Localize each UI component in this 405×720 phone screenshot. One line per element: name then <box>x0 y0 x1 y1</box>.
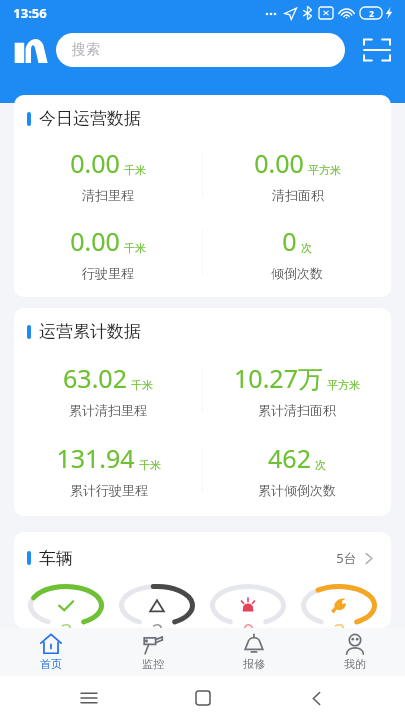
button[interactable]: Home <box>179 676 227 720</box>
staticText: 次 <box>301 241 312 255</box>
staticText: 63.02 <box>63 361 127 395</box>
button[interactable]: 今日运营数据 <box>14 95 391 297</box>
button[interactable]: Recents <box>65 676 113 720</box>
staticText: 累计行驶里程 <box>70 482 148 498</box>
staticText: 今日运营数据 <box>39 108 141 129</box>
button[interactable]: 我的 <box>304 628 405 676</box>
staticText: 运营累计数据 <box>39 321 141 342</box>
staticText: 累计倾倒次数 <box>258 482 336 498</box>
staticText: 报修 <box>243 657 265 671</box>
staticText: 搜索 <box>72 41 100 59</box>
staticText: 行驶里程 <box>82 265 134 281</box>
staticText: 2 <box>151 616 164 628</box>
button[interactable]: 车辆状态 <box>118 583 196 628</box>
staticText: 13:56 <box>13 4 47 22</box>
staticText: 2 <box>369 8 374 19</box>
staticText: 0.00 <box>70 146 120 180</box>
button[interactable]: 运营累计数据 <box>14 308 391 516</box>
other: Logo <box>14 37 48 63</box>
staticText: 累计清扫里程 <box>69 402 147 418</box>
staticText: 千米 <box>124 163 146 177</box>
staticText: 3 <box>60 616 73 628</box>
button[interactable]: 5台 <box>332 545 377 571</box>
staticText: 5台 <box>336 549 357 567</box>
button[interactable]: 监控 <box>102 628 203 676</box>
staticText: 清扫面积 <box>272 187 324 203</box>
button[interactable]: 车辆状态 <box>27 583 105 628</box>
button[interactable]: 车辆状态 <box>209 583 287 628</box>
button[interactable]: 扫一扫 <box>357 30 397 70</box>
staticText: 0 <box>242 616 255 628</box>
button[interactable]: 报修 <box>203 628 304 676</box>
staticText: 千米 <box>131 378 153 392</box>
staticText: 监控 <box>142 657 164 671</box>
button[interactable]: 车辆状态 <box>300 583 378 628</box>
staticText: 我的 <box>344 657 366 671</box>
button[interactable]: 首页 <box>0 628 102 676</box>
staticText: 3 <box>333 616 346 628</box>
staticText: 清扫里程 <box>82 187 134 203</box>
staticText: 首页 <box>40 657 62 671</box>
staticText: 0.00 <box>70 224 120 258</box>
staticText: 千米 <box>139 458 161 472</box>
button[interactable]: Back <box>292 676 340 720</box>
button[interactable]: 搜索 <box>56 33 345 67</box>
staticText: 千米 <box>124 241 146 255</box>
staticText: 平方米 <box>327 378 360 392</box>
staticText: 462 <box>268 441 311 475</box>
staticText: 10.27万 <box>234 361 323 395</box>
staticText: 平方米 <box>308 163 341 177</box>
staticText: 车辆 <box>39 548 73 569</box>
staticText: 倾倒次数 <box>271 265 323 281</box>
staticText: 次 <box>315 458 326 472</box>
staticText: 累计清扫面积 <box>258 402 336 418</box>
staticText: 131.94 <box>56 441 135 475</box>
staticText: 0.00 <box>254 146 304 180</box>
staticText: 0 <box>282 224 297 258</box>
